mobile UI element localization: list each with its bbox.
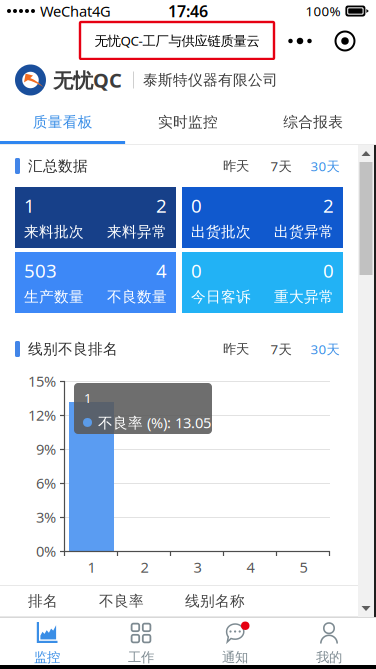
button[interactable]: 昨天 — [212, 336, 260, 362]
staticText: 0 — [191, 258, 202, 283]
staticText: 12% — [28, 405, 56, 425]
staticText: 30天 — [310, 340, 339, 358]
staticText: 来料异常 — [107, 223, 167, 241]
staticText: 15% — [28, 371, 56, 391]
staticText: 3% — [36, 507, 56, 527]
staticText: 不良数量 — [107, 288, 167, 306]
staticText: 汇总数据 — [28, 157, 88, 175]
staticText: 实时监控 — [158, 113, 218, 131]
staticText: 9% — [36, 439, 56, 459]
staticText: 无忧QC-工厂与供应链质量云 — [94, 32, 259, 49]
staticText: 0 — [323, 258, 334, 283]
staticText: 1 — [84, 389, 92, 407]
staticText: 工作 — [128, 649, 154, 665]
staticText: 17:46 — [168, 0, 208, 22]
staticText: 5 — [299, 557, 307, 577]
staticText: 排名 — [28, 592, 58, 610]
button[interactable]: 无忧QC-工厂与供应链质量云 — [80, 22, 274, 59]
button[interactable]: 503 — [15, 252, 176, 313]
staticText: 生产数量 — [24, 288, 84, 306]
staticText: 3 — [193, 557, 201, 577]
button[interactable]: 工作 — [94, 618, 188, 665]
staticText: 昨天 — [223, 341, 249, 357]
staticText: 来料批次 — [24, 223, 84, 241]
staticText: 7天 — [270, 340, 291, 358]
button[interactable]: 通知 — [188, 618, 282, 665]
button[interactable]: 监控 — [0, 618, 94, 665]
staticText: 2 — [323, 193, 334, 218]
staticText: 昨天 — [223, 158, 249, 174]
staticText: 30天 — [310, 157, 339, 175]
staticText: 6% — [36, 473, 56, 493]
staticText: 我的 — [316, 649, 342, 665]
staticText: WeChat4G — [40, 1, 111, 21]
staticText: 无忧QC — [53, 67, 122, 93]
button[interactable]: 质量看板 — [0, 100, 125, 144]
button[interactable]: 30天 — [302, 336, 348, 362]
staticText: 出货异常 — [274, 223, 334, 241]
staticText: 1 — [87, 557, 95, 577]
button[interactable]: 昨天 — [212, 153, 260, 179]
staticText: 0 — [191, 193, 202, 218]
staticText: 0% — [36, 541, 56, 561]
button[interactable]: 0 — [182, 187, 343, 248]
staticText: 2 — [140, 557, 148, 577]
staticText: 7天 — [270, 157, 291, 175]
staticText: 今日客诉 — [191, 288, 251, 306]
button[interactable]: 1 — [15, 187, 176, 248]
button[interactable]: 实时监控 — [125, 100, 251, 144]
staticText: 4 — [246, 557, 254, 577]
staticText: 线别名称 — [185, 592, 245, 610]
staticText: 4 — [156, 258, 167, 283]
staticText: 不良率 — [99, 592, 144, 610]
staticText: 不良率 (%): 13.05 — [98, 413, 211, 432]
button[interactable]: 7天 — [260, 153, 302, 179]
staticText: 监控 — [34, 649, 60, 665]
staticText: 出货批次 — [191, 223, 251, 241]
button[interactable]: Close — [328, 24, 362, 58]
staticText: 泰斯特仪器有限公司 — [143, 71, 278, 89]
button[interactable]: More options — [283, 24, 317, 58]
staticText: 2 — [156, 193, 167, 218]
button[interactable]: 我的 — [282, 618, 376, 665]
button[interactable]: 综合报表 — [251, 100, 376, 144]
button[interactable]: 7天 — [260, 336, 302, 362]
staticText: 质量看板 — [33, 113, 93, 131]
staticText: 1 — [24, 193, 35, 218]
button[interactable]: 30天 — [302, 153, 348, 179]
staticText: 通知 — [222, 649, 248, 665]
staticText: 综合报表 — [283, 113, 343, 131]
staticText: 重大异常 — [274, 288, 334, 306]
staticText: 100% — [305, 2, 340, 20]
staticText: 503 — [24, 258, 57, 283]
button[interactable]: 0 — [182, 252, 343, 313]
staticText: 线别不良排名 — [28, 340, 118, 358]
